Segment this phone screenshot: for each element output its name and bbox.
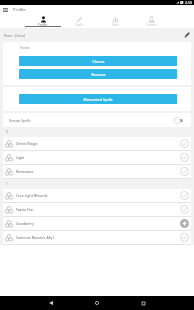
button[interactable]: Open navigation menu xyxy=(1,5,10,14)
button[interactable]: Detect Magic xyxy=(3,137,191,150)
button[interactable]: Cure Light Wounds xyxy=(3,189,191,202)
staticText: Goodberry xyxy=(16,221,34,226)
staticText: Profile xyxy=(13,7,26,13)
staticText: Faerie Fire xyxy=(16,207,34,212)
staticText: Known Spells xyxy=(9,118,31,123)
staticText: 1 xyxy=(6,182,8,186)
button[interactable]: Faerie Fire xyxy=(3,203,191,216)
staticText: 0 xyxy=(6,130,8,134)
staticText: Memorized Spells xyxy=(83,97,113,102)
button[interactable]: Known Spells xyxy=(3,113,191,127)
button[interactable]: Back xyxy=(28,296,74,310)
button[interactable]: Light xyxy=(3,151,191,164)
button[interactable]: Prepare spell xyxy=(179,232,190,243)
staticText: Cure Light Wounds xyxy=(16,193,48,198)
staticText: Resistance xyxy=(16,169,34,174)
button[interactable]: Classes xyxy=(19,56,177,66)
staticText: 4:58 xyxy=(185,0,192,5)
staticText: Bonuses xyxy=(91,72,106,77)
staticText: Classes xyxy=(92,59,105,64)
button[interactable]: Prepare spell xyxy=(179,138,190,149)
staticText: Summon Nature's Ally I xyxy=(16,235,55,240)
button[interactable]: Profile xyxy=(25,14,61,28)
button[interactable]: Resistance xyxy=(3,165,191,178)
staticText: Light xyxy=(16,155,25,160)
button[interactable]: Potions xyxy=(133,14,169,28)
button[interactable]: Summon Nature's Ally I xyxy=(3,231,191,244)
button[interactable]: Spells xyxy=(61,14,97,28)
button[interactable]: Recent apps xyxy=(120,296,166,310)
staticText: Potions xyxy=(146,23,157,27)
staticText: Spells xyxy=(75,23,84,27)
staticText: Profile xyxy=(38,23,48,27)
button[interactable]: Prepare spell xyxy=(179,204,190,215)
button[interactable]: Prepare spell xyxy=(179,166,190,177)
button[interactable]: Add spell xyxy=(179,218,190,229)
button[interactable]: Prepare spell xyxy=(179,190,190,201)
staticText: Detect Magic xyxy=(16,141,38,146)
button[interactable]: Prepare spell xyxy=(179,152,190,163)
button[interactable]: Home xyxy=(74,296,120,310)
button[interactable]: Stats xyxy=(97,14,133,28)
button[interactable]: Toggle known spells xyxy=(174,117,183,124)
button[interactable]: Goodberry xyxy=(3,217,191,230)
staticText: Penn - Druid xyxy=(4,33,25,38)
button[interactable]: Memorized Spells xyxy=(19,94,177,104)
staticText: Stats xyxy=(112,23,119,27)
staticText: Points xyxy=(20,46,30,50)
button[interactable]: Edit character xyxy=(182,30,192,40)
button[interactable]: Bonuses xyxy=(19,69,177,79)
